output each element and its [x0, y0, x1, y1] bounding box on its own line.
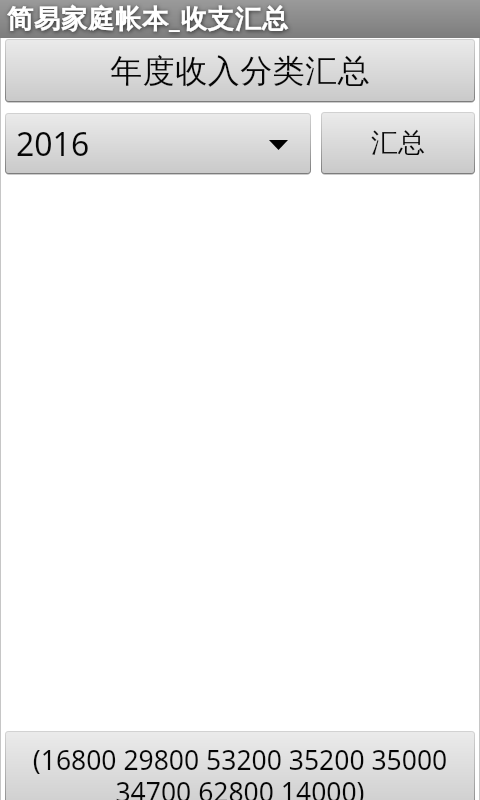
other: Select year	[269, 140, 288, 150]
staticText: 汇总	[371, 126, 425, 160]
button[interactable]: 2016	[5, 113, 311, 174]
staticText: 简易家庭帐本_收支汇总	[7, 0, 289, 36]
staticText: (16800 29800 53200 35200 35000 34700 628…	[13, 742, 467, 800]
staticText: 年度收入分类汇总	[110, 51, 370, 91]
button[interactable]: (16800 29800 53200 35200 35000 34700 628…	[5, 731, 475, 800]
button[interactable]: 汇总	[321, 112, 475, 174]
button[interactable]: 年度收入分类汇总	[5, 39, 475, 102]
staticText: 2016	[16, 122, 90, 166]
